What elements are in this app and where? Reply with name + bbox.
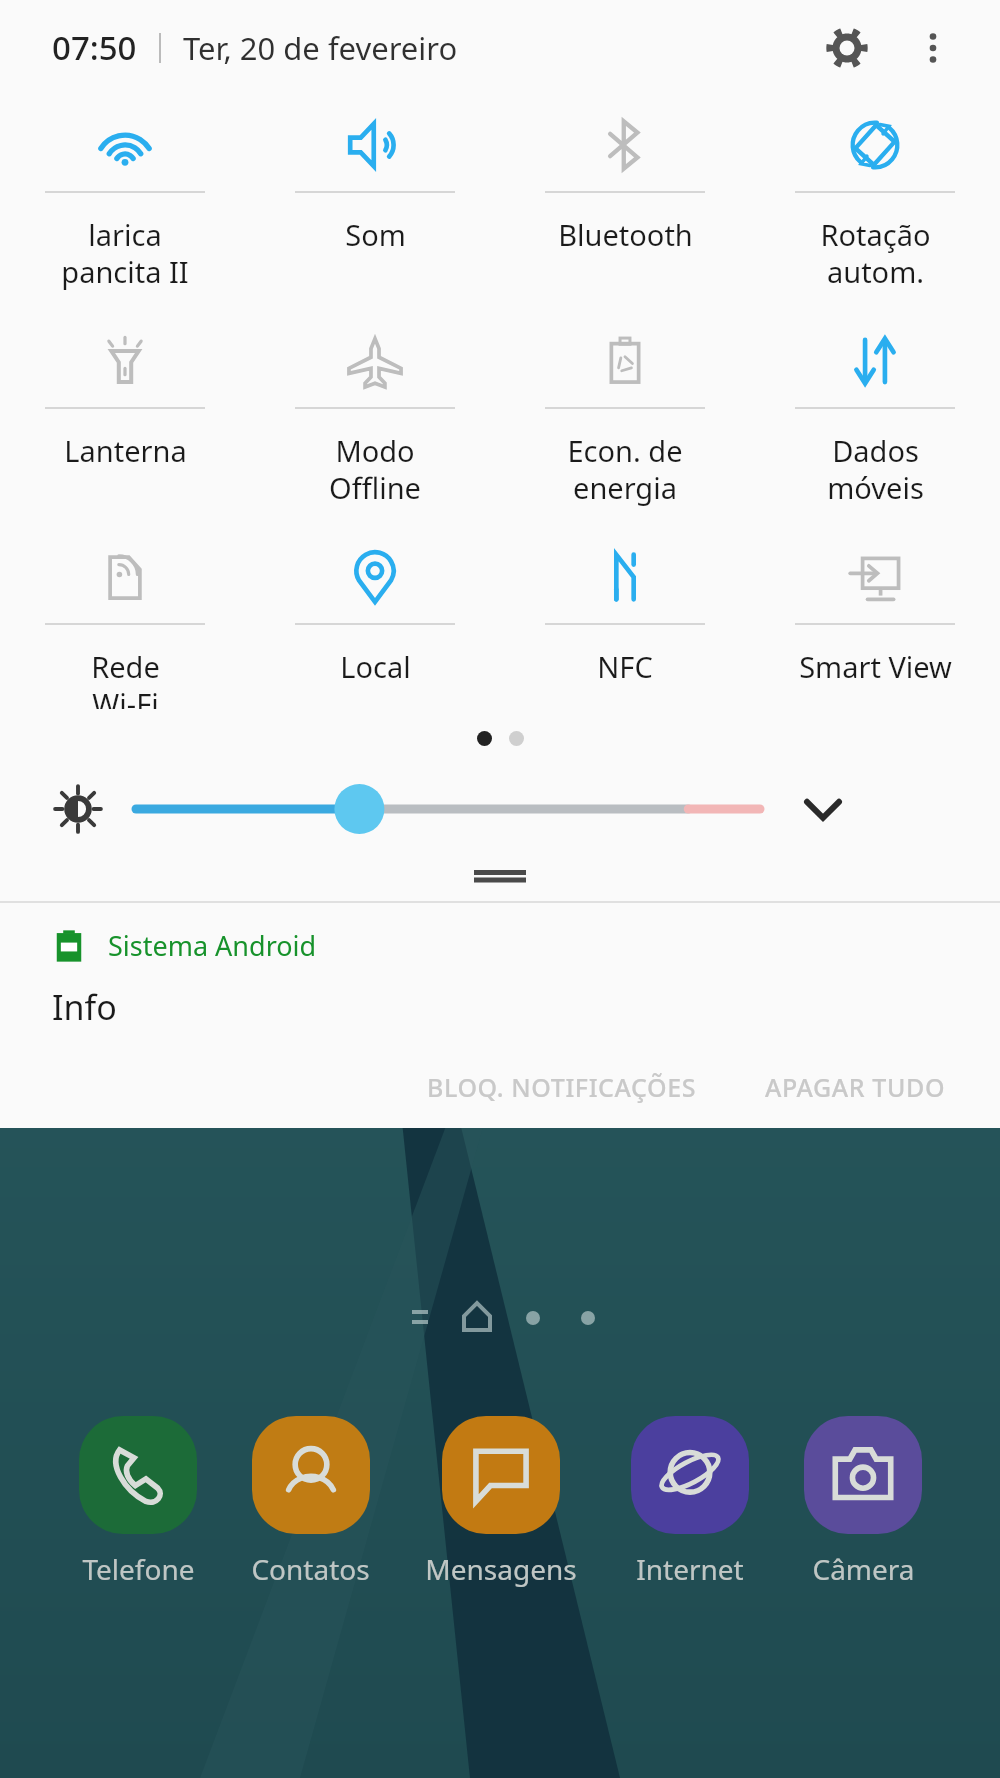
button[interactable]: Bluetooth	[500, 95, 750, 311]
button[interactable]: Som	[250, 95, 500, 311]
button[interactable]: Modo Offline	[250, 311, 500, 527]
button[interactable]: Mensagens	[425, 1416, 577, 1588]
button[interactable]: Econ. de energia	[500, 311, 750, 527]
button[interactable]: larica pancita II	[0, 95, 250, 311]
staticText: Sistema Android	[108, 927, 317, 964]
staticText: Modo Offline	[329, 431, 421, 508]
staticText: Econ. de energia	[567, 431, 683, 508]
staticText: Dados móveis	[827, 431, 924, 508]
staticText: Mensagens	[425, 1550, 577, 1588]
staticText: Som	[345, 215, 406, 254]
button[interactable]: BLOQ. NOTIFICAÇÕES	[421, 1060, 703, 1114]
staticText: BLOQ. NOTIFICAÇÕES	[427, 1070, 697, 1104]
staticText: Câmera	[812, 1550, 915, 1588]
staticText: 07:50	[52, 25, 137, 70]
button[interactable]: Smart View	[750, 527, 1000, 709]
staticText: NFC	[597, 647, 653, 686]
staticText: Ter, 20 de fevereiro	[183, 27, 458, 69]
button[interactable]: Settings	[810, 11, 884, 85]
staticText: Internet	[636, 1550, 744, 1588]
button[interactable]: Câmera	[804, 1416, 922, 1588]
button[interactable]: NFC	[500, 527, 750, 709]
staticText: Info	[52, 984, 117, 1030]
staticText: Contatos	[251, 1550, 370, 1588]
staticText: Rede Wi-Fi	[91, 647, 160, 709]
button[interactable]: Contatos	[251, 1416, 370, 1588]
staticText: Bluetooth	[558, 215, 693, 254]
button[interactable]: Rede Wi-Fi	[0, 527, 250, 709]
button[interactable]: Lanterna	[0, 311, 250, 527]
button[interactable]: More options	[896, 11, 970, 85]
staticText: APAGAR TUDO	[765, 1070, 946, 1104]
staticText: Smart View	[799, 647, 952, 686]
button[interactable]: Local	[250, 527, 500, 709]
button[interactable]: Sistema Android	[0, 903, 1000, 1112]
staticText: Local	[340, 647, 411, 686]
staticText: Bateria completamente carregada.	[52, 1042, 559, 1084]
button[interactable]: Dados móveis	[750, 311, 1000, 527]
staticText: Lanterna	[64, 431, 187, 470]
staticText: Telefone	[82, 1550, 195, 1588]
button[interactable]: Rotação autom.	[750, 95, 1000, 311]
staticText: Rotação autom.	[820, 215, 931, 292]
staticText: larica pancita II	[61, 215, 189, 292]
button[interactable]: Telefone	[79, 1416, 197, 1588]
button[interactable]: Internet	[631, 1416, 749, 1588]
button[interactable]: Expand	[786, 772, 860, 846]
button[interactable]: APAGAR TUDO	[759, 1060, 952, 1114]
